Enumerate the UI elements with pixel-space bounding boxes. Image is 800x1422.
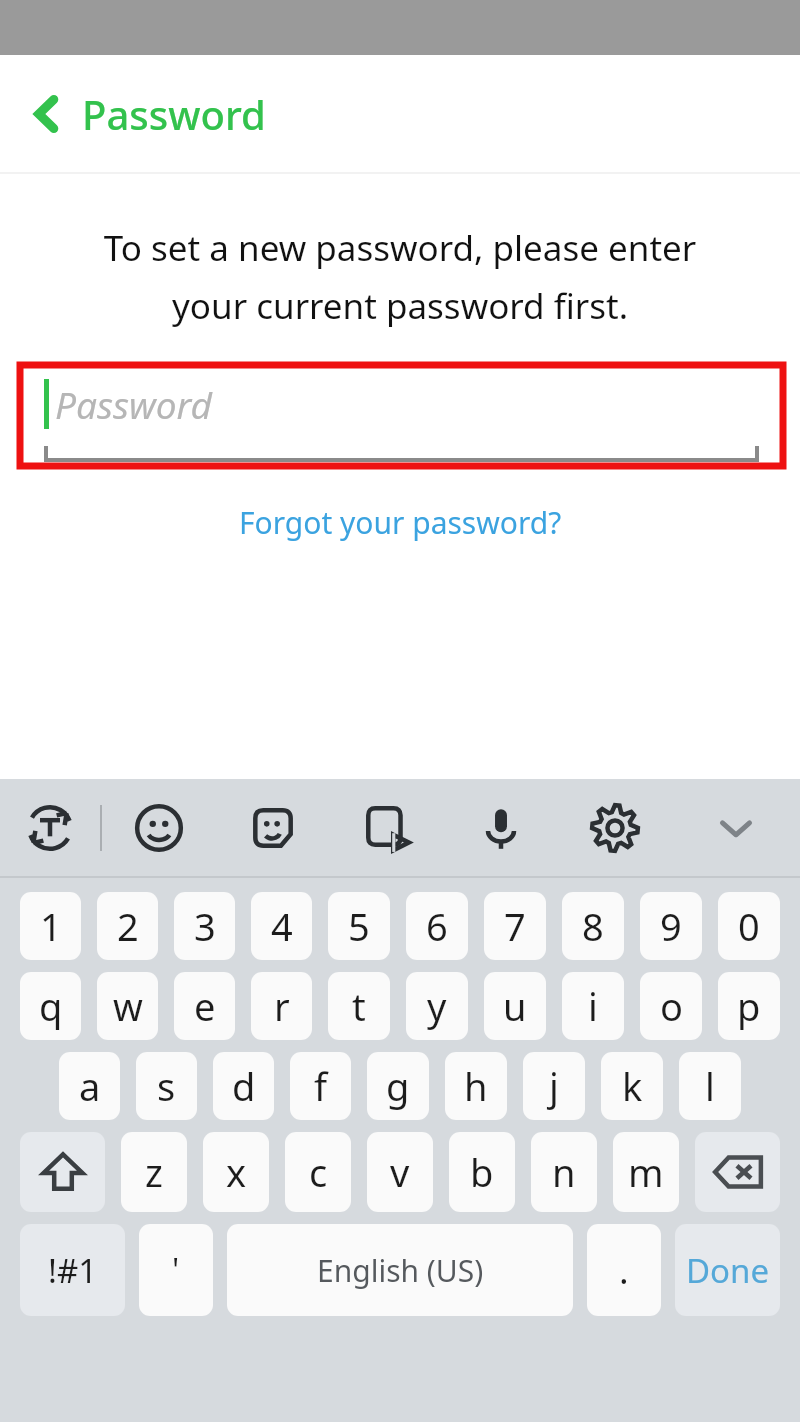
- button[interactable]: 7: [484, 892, 546, 960]
- button[interactable]: Settings: [558, 779, 672, 876]
- button[interactable]: h: [445, 1052, 507, 1120]
- button[interactable]: Forgot your password?: [231, 494, 570, 551]
- button[interactable]: 9: [640, 892, 702, 960]
- staticText: r: [274, 980, 290, 1032]
- button[interactable]: 6: [406, 892, 468, 960]
- button[interactable]: n: [531, 1132, 597, 1212]
- staticText: p: [737, 980, 761, 1032]
- staticText: ': [172, 1248, 180, 1292]
- staticText: z: [145, 1146, 163, 1198]
- staticText: 8: [582, 900, 604, 952]
- button[interactable]: Password: [44, 365, 759, 466]
- staticText: l: [705, 1060, 715, 1112]
- button[interactable]: r: [251, 972, 312, 1040]
- staticText: k: [622, 1060, 643, 1112]
- button[interactable]: Translate: [0, 779, 100, 876]
- button[interactable]: Shift: [20, 1132, 105, 1212]
- staticText: Done: [686, 1248, 770, 1293]
- button[interactable]: 3: [174, 892, 235, 960]
- staticText: Forgot your password?: [239, 502, 562, 543]
- button[interactable]: ': [139, 1224, 213, 1316]
- button[interactable]: Voice input: [444, 779, 558, 876]
- staticText: !#1: [48, 1248, 98, 1293]
- staticText: i: [588, 980, 598, 1032]
- staticText: 1: [40, 900, 62, 952]
- button[interactable]: e: [174, 972, 235, 1040]
- button[interactable]: GIF: [330, 779, 444, 876]
- button[interactable]: y: [406, 972, 468, 1040]
- button[interactable]: Back: [0, 55, 800, 172]
- staticText: 6: [426, 900, 448, 952]
- button[interactable]: q: [20, 972, 81, 1040]
- button[interactable]: g: [367, 1052, 429, 1120]
- button[interactable]: f: [290, 1052, 351, 1120]
- button[interactable]: 4: [251, 892, 312, 960]
- staticText: y: [427, 980, 447, 1032]
- button[interactable]: Hide keyboard: [672, 779, 800, 876]
- button[interactable]: 2: [97, 892, 158, 960]
- staticText: 3: [194, 900, 216, 952]
- button[interactable]: 1: [20, 892, 81, 960]
- staticText: v: [390, 1146, 410, 1198]
- staticText: j: [549, 1060, 559, 1112]
- staticText: English (US): [317, 1250, 484, 1291]
- staticText: e: [194, 980, 216, 1032]
- staticText: c: [309, 1146, 328, 1198]
- button[interactable]: l: [679, 1052, 741, 1120]
- button[interactable]: Done: [675, 1224, 780, 1316]
- staticText: o: [660, 980, 683, 1032]
- button[interactable]: c: [285, 1132, 351, 1212]
- staticText: m: [628, 1146, 664, 1198]
- button[interactable]: s: [136, 1052, 197, 1120]
- button[interactable]: !#1: [20, 1224, 125, 1316]
- staticText: t: [352, 980, 366, 1032]
- staticText: 2: [117, 900, 139, 952]
- staticText: g: [386, 1060, 410, 1112]
- button[interactable]: p: [718, 972, 780, 1040]
- staticText: f: [314, 1060, 328, 1112]
- button[interactable]: b: [449, 1132, 515, 1212]
- button[interactable]: 0: [718, 892, 780, 960]
- other: Back: [30, 92, 64, 136]
- staticText: 9: [660, 900, 682, 952]
- button[interactable]: Backspace: [695, 1132, 780, 1212]
- button[interactable]: .: [587, 1224, 661, 1316]
- staticText: n: [552, 1146, 576, 1198]
- staticText: 0: [738, 900, 760, 952]
- staticText: 4: [271, 900, 293, 952]
- button[interactable]: x: [203, 1132, 269, 1212]
- button[interactable]: a: [59, 1052, 120, 1120]
- staticText: b: [470, 1146, 494, 1198]
- button[interactable]: t: [328, 972, 390, 1040]
- staticText: .: [619, 1246, 629, 1295]
- button[interactable]: d: [213, 1052, 274, 1120]
- button[interactable]: m: [613, 1132, 679, 1212]
- staticText: q: [39, 980, 63, 1032]
- staticText: h: [464, 1060, 488, 1112]
- staticText: x: [226, 1146, 247, 1198]
- staticText: 7: [504, 900, 526, 952]
- staticText: Password: [55, 379, 212, 429]
- button[interactable]: 5: [328, 892, 390, 960]
- staticText: 5: [348, 900, 370, 952]
- staticText: s: [157, 1060, 176, 1112]
- staticText: a: [79, 1060, 101, 1112]
- button[interactable]: j: [523, 1052, 585, 1120]
- staticText: Password: [82, 87, 266, 141]
- button[interactable]: 8: [562, 892, 624, 960]
- button[interactable]: z: [121, 1132, 187, 1212]
- button[interactable]: w: [97, 972, 158, 1040]
- button[interactable]: Emoji: [102, 779, 216, 876]
- button[interactable]: Sticker: [216, 779, 330, 876]
- button[interactable]: k: [601, 1052, 663, 1120]
- staticText: w: [113, 980, 143, 1032]
- button[interactable]: English (US): [227, 1224, 573, 1316]
- staticText: u: [503, 980, 527, 1032]
- button[interactable]: v: [367, 1132, 433, 1212]
- staticText: To set a new password, please enter your…: [24, 224, 776, 329]
- staticText: d: [232, 1060, 256, 1112]
- button[interactable]: u: [484, 972, 546, 1040]
- button[interactable]: i: [562, 972, 624, 1040]
- button[interactable]: o: [640, 972, 702, 1040]
